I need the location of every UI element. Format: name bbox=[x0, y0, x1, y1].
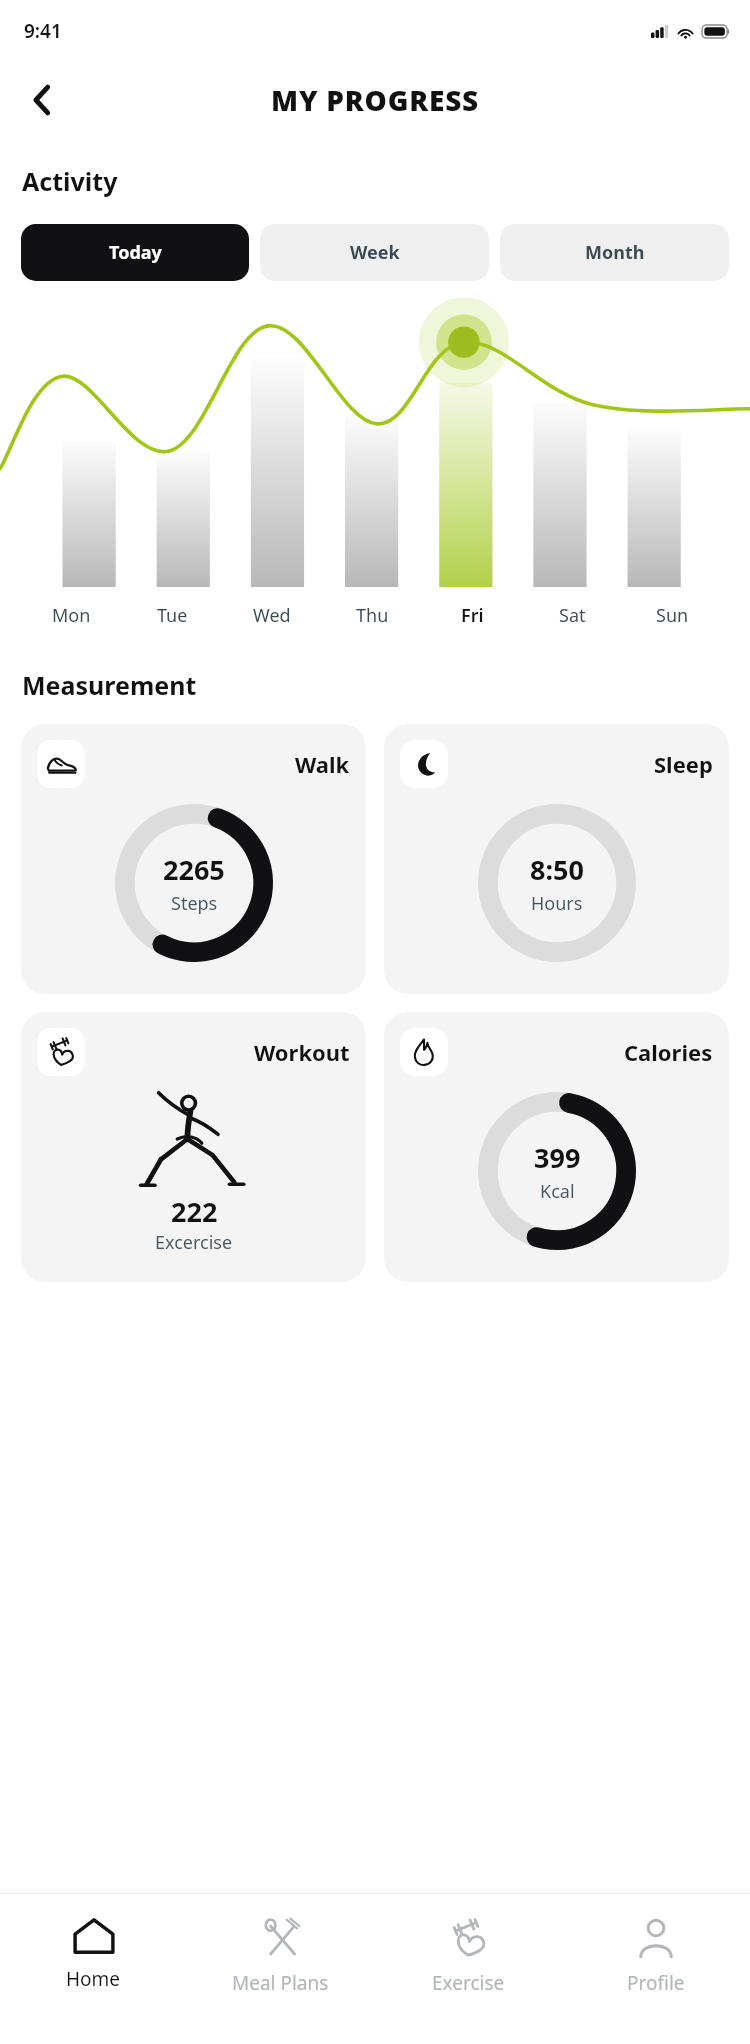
button[interactable]: Back bbox=[12, 70, 72, 130]
button[interactable]: Home bbox=[0, 1894, 187, 2044]
staticText: Kcal bbox=[540, 1179, 575, 1204]
staticText: Meal Plans bbox=[232, 1970, 329, 1996]
button[interactable]: Today bbox=[21, 224, 249, 281]
staticText: Month bbox=[585, 240, 645, 265]
staticText: Workout bbox=[254, 1037, 350, 1067]
staticText: Sat bbox=[559, 603, 586, 628]
staticText: Thu bbox=[356, 603, 389, 628]
staticText: Exercise bbox=[432, 1970, 505, 1996]
staticText: 222 bbox=[171, 1193, 218, 1230]
staticText: Home bbox=[66, 1966, 121, 1992]
staticText: Sleep bbox=[654, 749, 713, 779]
staticText: Fri bbox=[461, 603, 484, 628]
staticText: 8:50 bbox=[530, 851, 584, 888]
button[interactable]: Sleep bbox=[384, 724, 729, 994]
staticText: 399 bbox=[534, 1139, 581, 1176]
button[interactable]: Exercise bbox=[374, 1894, 562, 2044]
staticText: Excercise bbox=[155, 1230, 233, 1255]
staticText: Week bbox=[350, 240, 400, 265]
button[interactable]: Meal Plans bbox=[187, 1894, 374, 2044]
staticText: Profile bbox=[627, 1970, 685, 1996]
staticText: 9:41 bbox=[24, 18, 62, 44]
staticText: Sun bbox=[656, 603, 689, 628]
button[interactable]: Profile bbox=[562, 1894, 750, 2044]
staticText: Calories bbox=[624, 1037, 713, 1067]
staticText: 2265 bbox=[163, 851, 225, 888]
staticText: Hours bbox=[531, 891, 583, 916]
staticText: Today bbox=[109, 240, 162, 265]
button[interactable]: Workout bbox=[21, 1012, 366, 1282]
staticText: MY PROGRESS bbox=[271, 81, 480, 119]
staticText: Measurement bbox=[22, 668, 197, 702]
button[interactable]: Calories bbox=[384, 1012, 729, 1282]
button[interactable]: Month bbox=[500, 224, 729, 281]
staticText: Activity bbox=[22, 164, 118, 198]
button[interactable]: Walk bbox=[21, 724, 366, 994]
staticText: Steps bbox=[171, 891, 218, 916]
staticText: Mon bbox=[52, 603, 91, 628]
staticText: Tue bbox=[157, 603, 188, 628]
staticText: Walk bbox=[295, 749, 350, 779]
staticText: Wed bbox=[253, 603, 291, 628]
button[interactable]: Week bbox=[260, 224, 489, 281]
